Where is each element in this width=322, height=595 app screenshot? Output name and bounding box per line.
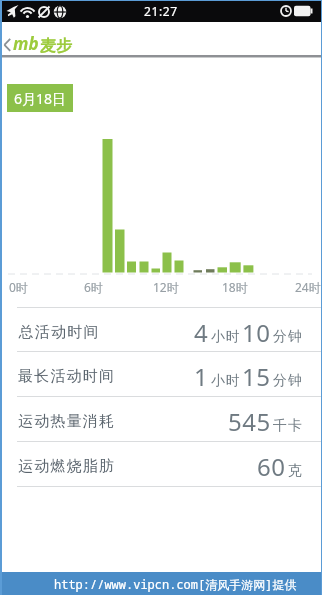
staticText: 小时 — [211, 328, 241, 346]
staticText: mb — [13, 32, 39, 55]
staticText: 60 — [257, 450, 286, 483]
staticText: 21:27 — [144, 3, 178, 19]
staticText: 麦步 — [40, 36, 72, 56]
button[interactable]: 运动热量消耗 — [0, 399, 322, 444]
staticText: 运动热量消耗 — [18, 412, 116, 431]
staticText: 15 — [242, 360, 271, 393]
staticText: 小时 — [211, 372, 241, 390]
button[interactable]: http://www.vipcn.com[清风手游网]提供 — [0, 572, 322, 595]
button[interactable]: 最长活动时间 — [0, 354, 322, 399]
button[interactable] — [0, 22, 110, 55]
staticText: 分钟 — [273, 372, 303, 390]
staticText: 克 — [288, 462, 303, 480]
staticText: 10 — [242, 316, 271, 349]
staticText: 18时 — [222, 279, 248, 295]
staticText: 总活动时间 — [18, 323, 99, 342]
staticText: 分钟 — [273, 328, 303, 346]
staticText: 4 — [194, 316, 209, 349]
staticText: 千卡 — [273, 417, 303, 435]
staticText: 545 — [228, 405, 271, 438]
staticText: 1 — [194, 360, 209, 393]
button[interactable]: 总活动时间 — [0, 310, 322, 355]
button[interactable]: 运动燃烧脂肪 — [0, 444, 322, 489]
staticText: 最长活动时间 — [18, 367, 116, 386]
staticText: 6时 — [84, 279, 103, 295]
staticText: http://www.vipcn.com[清风手游网]提供 — [54, 576, 297, 592]
staticText: 12时 — [153, 279, 179, 295]
staticText: 24时 — [295, 279, 321, 295]
staticText: 0时 — [9, 279, 28, 295]
staticText: 运动燃烧脂肪 — [18, 457, 116, 476]
button[interactable]: 6月18日 — [7, 84, 73, 112]
staticText: 6月18日 — [14, 89, 67, 108]
